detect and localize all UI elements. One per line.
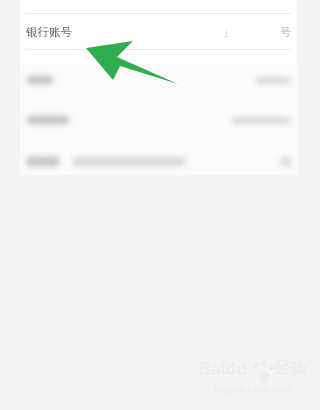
staticText: 必填银行卡号 — [225, 25, 291, 39]
staticText: 银行账号 — [26, 25, 72, 39]
staticText: 经验 — [274, 359, 306, 379]
staticText: Baidu — [199, 357, 248, 380]
other: Annotation arrow — [0, 0, 320, 410]
button[interactable]: 银行账号 — [20, 14, 297, 49]
button[interactable] — [20, 67, 297, 93]
button[interactable] — [20, 147, 297, 175]
button[interactable] — [20, 107, 297, 133]
